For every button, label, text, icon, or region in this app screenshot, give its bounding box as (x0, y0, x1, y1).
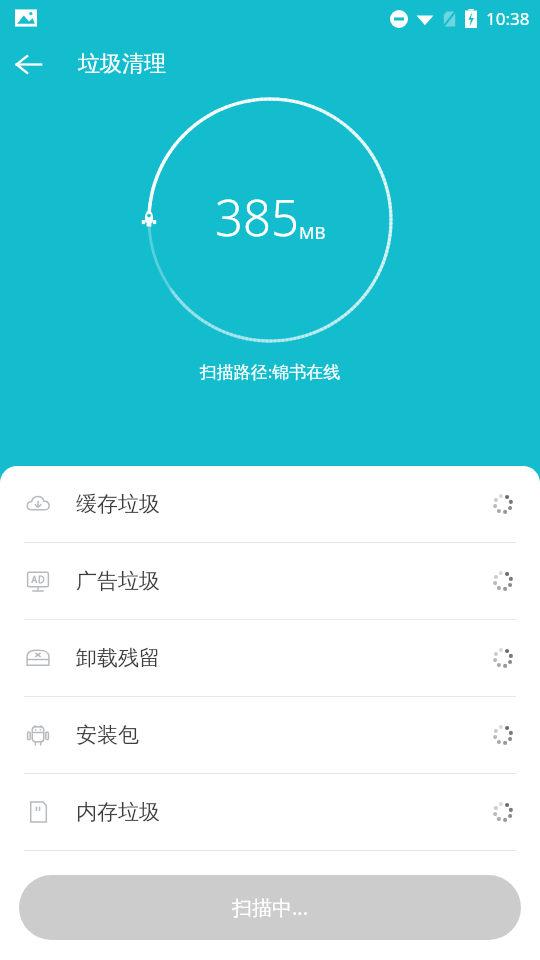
staticText: 缓存垃圾 (76, 491, 160, 517)
button[interactable]: 扫描中... (19, 875, 521, 940)
staticText: 垃圾清理 (78, 50, 166, 78)
button[interactable]: 卸载残留 (0, 620, 540, 696)
staticText: MB (299, 221, 326, 244)
staticText: 卸载残留 (76, 645, 160, 671)
button[interactable]: 广告垃圾 (0, 543, 540, 619)
button[interactable]: 缓存垃圾 (0, 466, 540, 542)
staticText: 扫描中... (232, 894, 309, 921)
button[interactable]: Back (0, 36, 56, 92)
staticText: 内存垃圾 (76, 799, 160, 825)
staticText: 安装包 (76, 722, 139, 748)
button[interactable]: 内存垃圾 (0, 774, 540, 850)
staticText: 广告垃圾 (76, 568, 160, 594)
staticText: 扫描路径:锦书在线 (0, 360, 540, 383)
staticText: 385 (215, 184, 299, 251)
button[interactable]: 安装包 (0, 697, 540, 773)
staticText: 10:38 (486, 7, 530, 30)
